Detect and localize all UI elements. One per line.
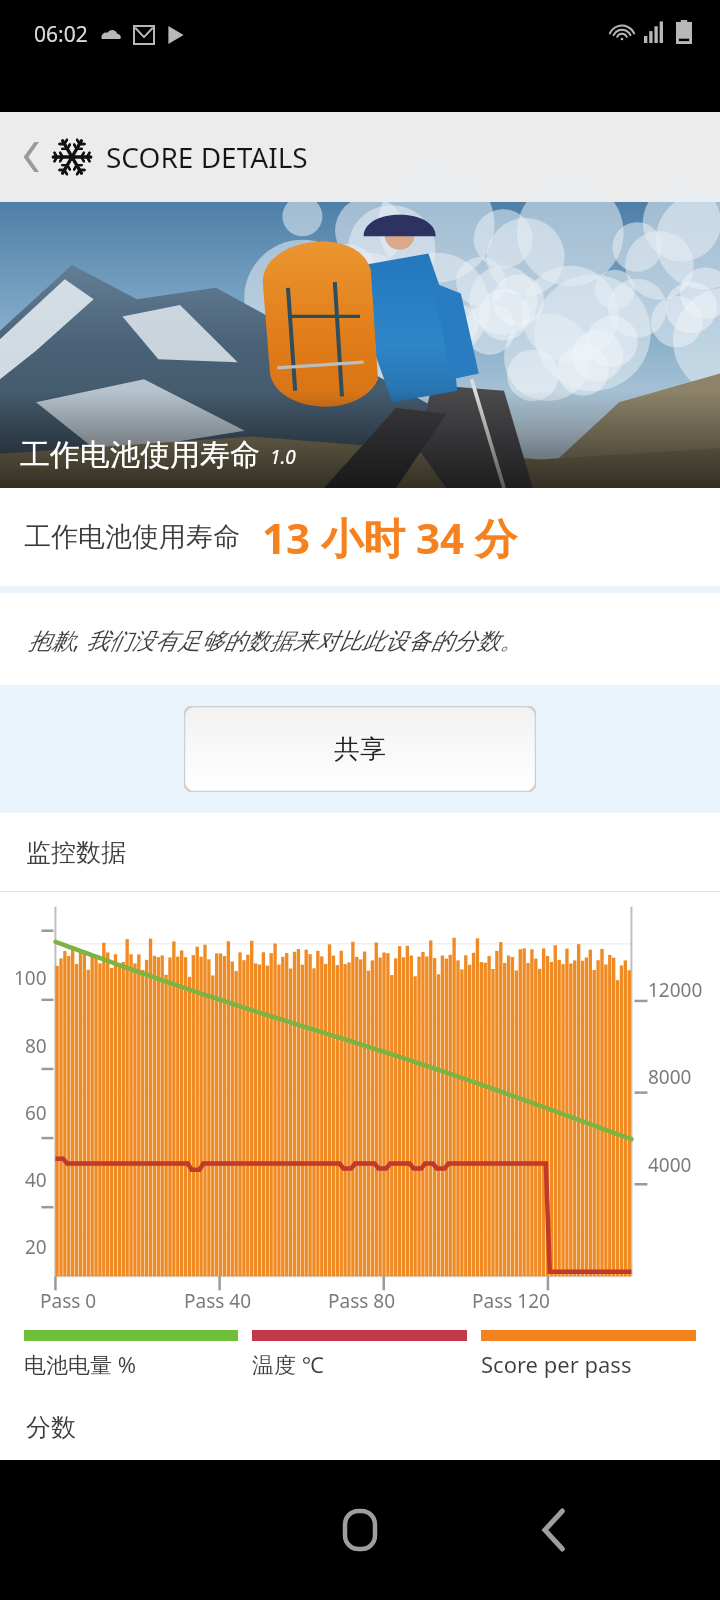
staticText: Pass 0 bbox=[40, 1288, 97, 1314]
button[interactable]: Back bbox=[8, 135, 52, 179]
staticText: 20 bbox=[25, 1234, 47, 1260]
staticText: 40 bbox=[25, 1167, 47, 1193]
staticText: 100 bbox=[14, 965, 47, 991]
staticText: SCORE DETAILS bbox=[106, 138, 308, 176]
button[interactable]: Home bbox=[314, 1484, 406, 1576]
staticText: 80 bbox=[25, 1033, 47, 1059]
staticText: 1.0 bbox=[270, 444, 296, 470]
staticText: Pass 40 bbox=[184, 1288, 252, 1314]
button[interactable]: Back bbox=[508, 1484, 600, 1576]
staticText: 电池电量 % bbox=[24, 1349, 137, 1379]
staticText: 温度 ℃ bbox=[252, 1349, 324, 1379]
staticText: 12000 bbox=[648, 977, 703, 1003]
staticText: 4000 bbox=[648, 1152, 692, 1178]
button[interactable]: 监控数据 bbox=[0, 813, 720, 891]
button[interactable]: 共享 bbox=[184, 706, 536, 792]
staticText: 工作电池使用寿命 bbox=[20, 436, 260, 474]
staticText: 8000 bbox=[648, 1064, 692, 1090]
staticText: 抱歉, 我们没有足够的数据来对比此设备的分数。 bbox=[28, 624, 523, 655]
staticText: 共享 bbox=[334, 733, 386, 766]
staticText: 分数 bbox=[26, 1412, 76, 1443]
staticText: Pass 120 bbox=[472, 1288, 550, 1314]
staticText: 60 bbox=[25, 1100, 47, 1126]
button[interactable]: 工作电池使用寿命 bbox=[0, 488, 720, 586]
button[interactable]: 抱歉, 我们没有足够的数据来对比此设备的分数。 bbox=[0, 593, 720, 685]
button[interactable]: 分数 bbox=[0, 1395, 720, 1460]
staticText: 06:02 bbox=[34, 20, 88, 49]
staticText: Pass 80 bbox=[328, 1288, 396, 1314]
staticText: 监控数据 bbox=[26, 837, 126, 868]
staticText: 13 小时 34 分 bbox=[262, 509, 517, 566]
staticText: Score per pass bbox=[481, 1349, 632, 1379]
staticText: 工作电池使用寿命 bbox=[24, 520, 240, 554]
